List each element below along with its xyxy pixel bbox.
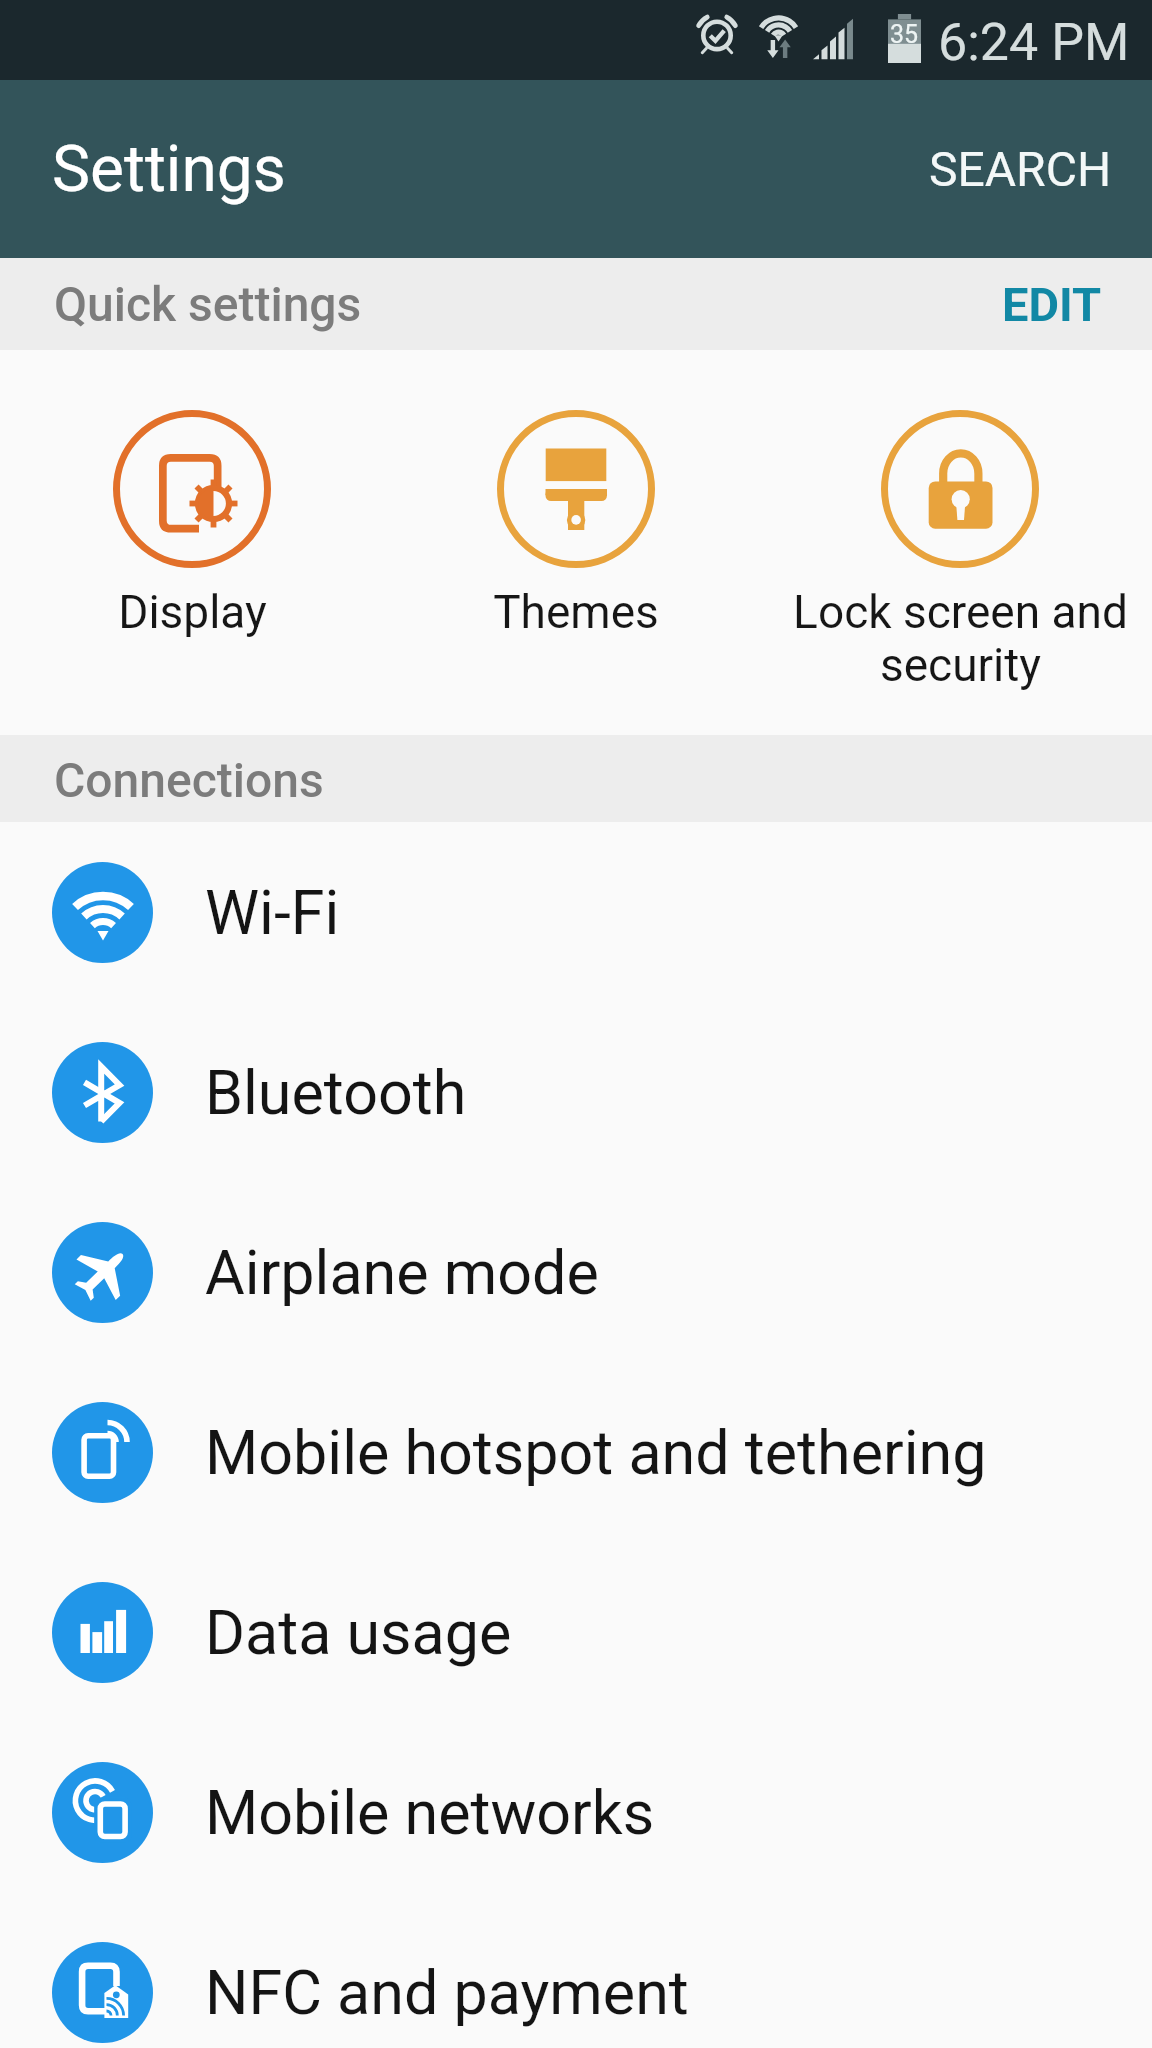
- button[interactable]: Display: [0, 350, 384, 639]
- staticText: Themes: [493, 585, 659, 639]
- staticText: Mobile networks: [205, 1777, 655, 1848]
- button[interactable]: Mobile hotspot and tethering: [0, 1362, 1152, 1542]
- button[interactable]: Lock screen and security: [768, 350, 1152, 692]
- button[interactable]: EDIT: [957, 259, 1152, 350]
- staticText: 35: [890, 20, 919, 49]
- button[interactable]: NFC and payment: [0, 1902, 1152, 2048]
- staticText: Bluetooth: [205, 1057, 467, 1128]
- staticText: EDIT: [1002, 277, 1102, 332]
- staticText: Data usage: [205, 1597, 512, 1668]
- staticText: Lock screen and security: [793, 585, 1128, 692]
- button[interactable]: Data usage: [0, 1542, 1152, 1722]
- staticText: 6:24 PM: [938, 12, 1130, 73]
- button[interactable]: Wi-Fi: [0, 822, 1152, 1002]
- staticText: Connections: [54, 752, 324, 808]
- staticText: Display: [118, 585, 267, 639]
- staticText: Airplane mode: [205, 1237, 599, 1308]
- staticText: Quick settings: [54, 276, 362, 332]
- staticText: NFC and payment: [205, 1957, 689, 2028]
- staticText: Settings: [52, 132, 286, 207]
- button[interactable]: Mobile networks: [0, 1722, 1152, 1902]
- staticText: SEARCH: [929, 141, 1112, 197]
- staticText: Mobile hotspot and tethering: [205, 1417, 987, 1488]
- button[interactable]: Themes: [384, 350, 768, 639]
- button[interactable]: Airplane mode: [0, 1182, 1152, 1362]
- button[interactable]: Bluetooth: [0, 1002, 1152, 1182]
- staticText: Wi-Fi: [205, 877, 340, 948]
- button[interactable]: SEARCH: [889, 111, 1152, 227]
